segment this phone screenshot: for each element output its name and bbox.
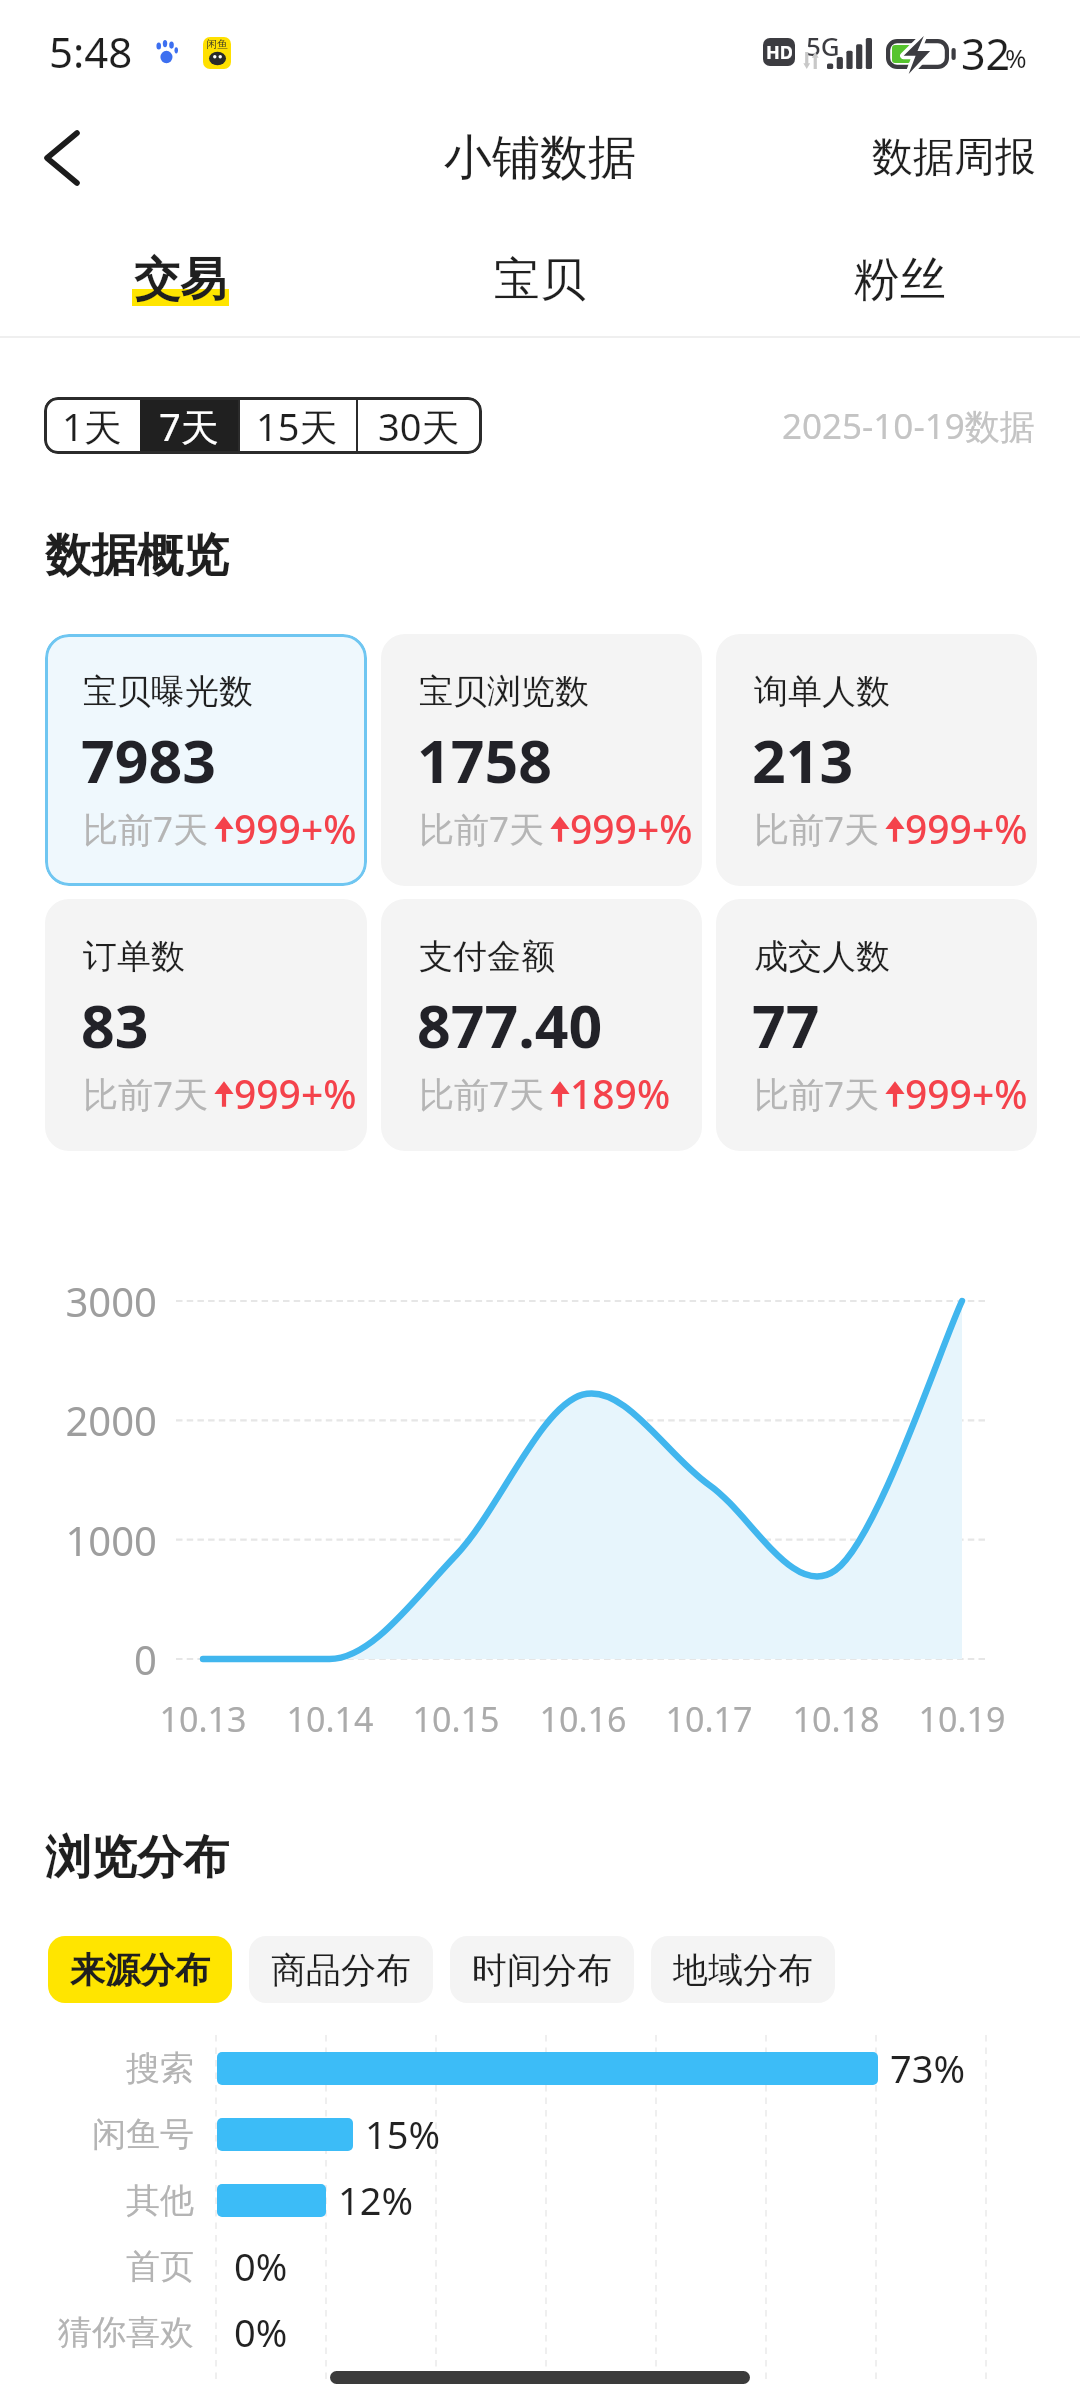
- staticText: 10.19: [892, 1696, 1032, 1742]
- staticText: 2025-10-19数据: [782, 402, 1035, 450]
- button[interactable]: 地域分布: [651, 1936, 835, 2003]
- staticText: 32: [961, 24, 1011, 83]
- staticText: 213: [752, 720, 854, 800]
- staticText: 0%: [234, 2306, 288, 2358]
- button[interactable]: Back: [18, 114, 106, 202]
- button[interactable]: 数据周报: [828, 110, 1080, 206]
- staticText: 1758: [417, 720, 552, 800]
- staticText: 地域分布: [673, 1948, 813, 1992]
- staticText: 10.14: [260, 1696, 400, 1742]
- staticText: 77: [752, 985, 820, 1065]
- staticText: 2000: [40, 1393, 157, 1447]
- staticText: 999+%: [234, 1067, 357, 1120]
- staticText: 搜索: [0, 2047, 194, 2090]
- staticText: 其他: [0, 2179, 194, 2222]
- button[interactable]: 询单人数: [716, 634, 1037, 886]
- staticText: 1天: [62, 400, 122, 452]
- staticText: 12%: [338, 2174, 414, 2226]
- button[interactable]: 30天: [356, 397, 482, 454]
- staticText: 比前7天: [754, 805, 880, 853]
- staticText: 3000: [40, 1274, 157, 1328]
- staticText: 877.40: [417, 985, 603, 1065]
- staticText: 时间分布: [472, 1948, 612, 1992]
- button[interactable]: 粉丝: [720, 216, 1080, 336]
- staticText: 73%: [890, 2042, 966, 2094]
- staticText: 189%: [570, 1067, 671, 1120]
- staticText: 10.13: [133, 1696, 273, 1742]
- staticText: 浏览分布: [45, 1829, 229, 1887]
- staticText: 猜你喜欢: [0, 2311, 194, 2354]
- staticText: 商品分布: [271, 1948, 411, 1992]
- staticText: %: [1005, 40, 1027, 75]
- staticText: 999+%: [905, 802, 1028, 855]
- button[interactable]: 支付金额: [381, 899, 702, 1151]
- button[interactable]: 订单数: [45, 899, 367, 1151]
- staticText: 比前7天: [419, 805, 545, 853]
- staticText: 0: [40, 1632, 157, 1686]
- staticText: 支付金额: [419, 935, 555, 978]
- staticText: 比前7天: [419, 1070, 545, 1118]
- staticText: 10.18: [766, 1696, 906, 1742]
- staticText: 999+%: [570, 802, 693, 855]
- staticText: 10.16: [513, 1696, 653, 1742]
- staticText: 10.15: [386, 1696, 526, 1742]
- staticText: 交易: [134, 251, 226, 309]
- staticText: 15%: [365, 2108, 441, 2160]
- button[interactable]: 宝贝浏览数: [381, 634, 702, 886]
- staticText: 首页: [0, 2245, 194, 2288]
- button[interactable]: 交易: [0, 216, 360, 336]
- staticText: 比前7天: [83, 805, 209, 853]
- staticText: 宝贝: [494, 251, 586, 309]
- staticText: 0%: [234, 2240, 288, 2292]
- staticText: 宝贝浏览数: [419, 670, 589, 713]
- staticText: 粉丝: [854, 251, 946, 309]
- staticText: 宝贝曝光数: [83, 670, 253, 713]
- button[interactable]: 7天: [140, 397, 238, 454]
- button[interactable]: 宝贝曝光数: [45, 634, 367, 886]
- staticText: 7983: [81, 720, 216, 800]
- staticText: 数据周报: [872, 132, 1036, 184]
- staticText: 询单人数: [754, 670, 890, 713]
- staticText: 比前7天: [83, 1070, 209, 1118]
- staticText: 5:48: [49, 23, 133, 80]
- button[interactable]: 宝贝: [360, 216, 720, 336]
- staticText: 30天: [378, 400, 460, 452]
- staticText: 5G: [806, 28, 840, 63]
- staticText: 来源分布: [70, 1948, 210, 1992]
- button[interactable]: 15天: [238, 397, 356, 454]
- staticText: HD: [766, 40, 793, 65]
- button[interactable]: 1天: [44, 397, 140, 454]
- staticText: 小铺数据: [444, 128, 636, 188]
- button[interactable]: 来源分布: [48, 1936, 232, 2003]
- button[interactable]: 时间分布: [450, 1936, 634, 2003]
- staticText: 数据概览: [45, 527, 229, 585]
- button[interactable]: 商品分布: [249, 1936, 433, 2003]
- staticText: 999+%: [234, 802, 357, 855]
- staticText: 闲鱼号: [0, 2113, 194, 2156]
- staticText: 闲鱼: [206, 37, 228, 51]
- staticText: 订单数: [83, 935, 185, 978]
- button[interactable]: 成交人数: [716, 899, 1037, 1151]
- staticText: 15天: [256, 400, 338, 452]
- staticText: 83: [81, 985, 149, 1065]
- staticText: 比前7天: [754, 1070, 880, 1118]
- staticText: 7天: [159, 400, 219, 452]
- staticText: 成交人数: [754, 935, 890, 978]
- staticText: 1000: [40, 1513, 157, 1567]
- staticText: 999+%: [905, 1067, 1028, 1120]
- staticText: 10.17: [639, 1696, 779, 1742]
